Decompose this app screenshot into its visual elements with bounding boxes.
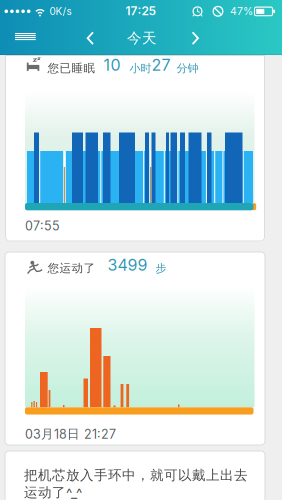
button[interactable] xyxy=(186,28,204,48)
staticText: 47% xyxy=(230,5,253,18)
staticText: 27 xyxy=(151,55,170,75)
staticText: 3499 xyxy=(107,255,147,275)
staticText: 17:25 xyxy=(125,3,156,18)
staticText: 您运动了 xyxy=(48,261,96,275)
staticText: 小时 xyxy=(129,61,151,75)
staticText: 03月18日 21:27 xyxy=(25,426,116,442)
staticText: 0K/s xyxy=(49,5,71,17)
staticText: 把机芯放入手环中，就可以戴上出去 xyxy=(24,467,248,484)
staticText: 07:55 xyxy=(25,218,60,233)
staticText: 10 xyxy=(103,55,120,75)
button[interactable] xyxy=(5,55,265,241)
staticText: 您已睡眠 xyxy=(48,61,96,75)
button[interactable] xyxy=(81,28,99,48)
button[interactable] xyxy=(5,451,265,500)
button[interactable] xyxy=(11,29,40,45)
button[interactable] xyxy=(5,252,265,445)
staticText: 步 xyxy=(155,261,166,275)
staticText: 今天 xyxy=(127,29,157,47)
staticText: 分钟 xyxy=(177,61,199,75)
staticText: 运动了^_^ xyxy=(24,484,82,500)
